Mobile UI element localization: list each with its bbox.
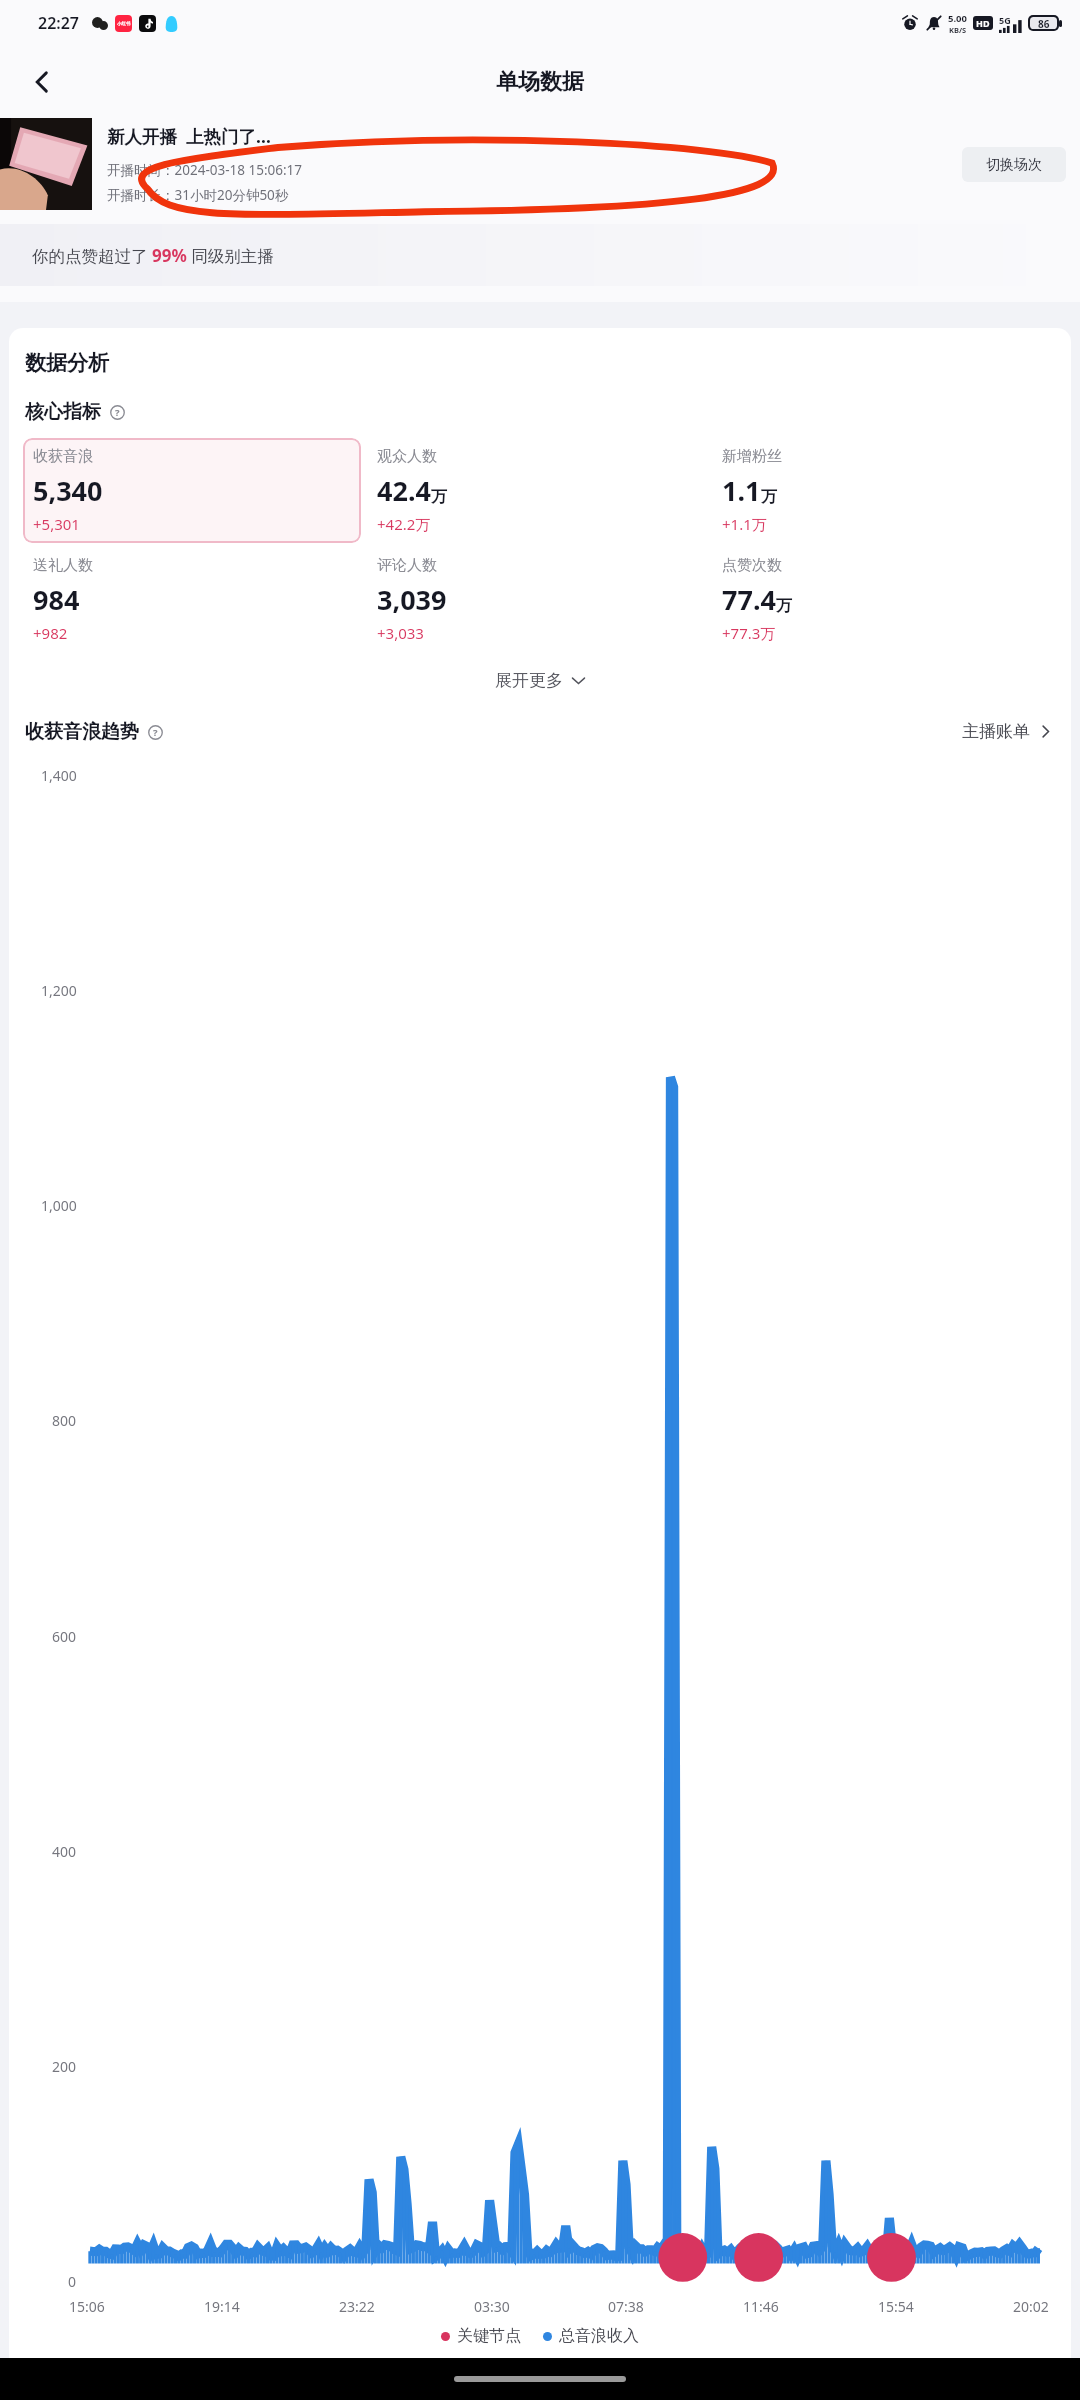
staticText: +77.3万 (722, 623, 776, 643)
button[interactable]: 主播账单 (958, 715, 1057, 748)
staticText: 15:06 (69, 2297, 105, 2316)
staticText: 5,340 (33, 472, 103, 509)
staticText: 42.4 (377, 472, 431, 509)
staticText: 984 (33, 581, 80, 618)
staticText: 86 (1038, 17, 1050, 29)
staticText: 你的点赞超过了 (32, 244, 152, 267)
staticText: 19:14 (204, 2297, 240, 2316)
staticText: 点赞次数 (722, 556, 782, 575)
button[interactable]: 新增粉丝 (712, 438, 1057, 543)
staticText: ? (153, 726, 158, 739)
staticText: 开播时间：2024-03-18 15:06:17 (107, 161, 303, 179)
staticText: 0 (68, 2272, 77, 2291)
staticText: 5G (999, 14, 1011, 26)
staticText: 总音浪收入 (559, 2326, 639, 2346)
staticText: 1.1 (722, 472, 761, 509)
button[interactable]: 评论人数 (367, 547, 712, 652)
staticText: +5,301 (33, 514, 80, 534)
staticText: +3,033 (377, 623, 424, 643)
staticText: 07:38 (608, 2297, 644, 2316)
staticText: 收获音浪 (33, 447, 93, 466)
staticText: 新增粉丝 (722, 447, 782, 466)
staticText: 切换场次 (986, 156, 1042, 174)
staticText: +1.1万 (722, 514, 767, 534)
staticText: 3,039 (377, 581, 447, 618)
staticText: 万 (761, 487, 777, 507)
staticText: 观众人数 (377, 447, 437, 466)
staticText: 主播账单 (962, 721, 1030, 742)
button[interactable]: 观众人数 (367, 438, 712, 543)
staticText: 1,200 (41, 981, 77, 1000)
button[interactable]: 切换场次 (962, 147, 1066, 182)
button[interactable]: 展开更多 (475, 662, 606, 699)
staticText: 11:46 (743, 2297, 779, 2316)
staticText: 收获音浪趋势 (25, 720, 139, 744)
staticText: 5.00 (948, 12, 967, 25)
staticText: 15:54 (878, 2297, 914, 2316)
staticText: 20:02 (1013, 2297, 1049, 2316)
button[interactable]: 说明 (107, 402, 127, 422)
staticText: 数据分析 (25, 350, 109, 376)
staticText: 开播时长：31小时20分钟50秒 (107, 186, 289, 204)
button[interactable]: 收获音浪 (23, 438, 361, 543)
staticText: 600 (52, 1627, 77, 1646)
staticText: 99% (152, 244, 187, 267)
staticText: 展开更多 (495, 670, 563, 691)
staticText: HD (976, 17, 990, 29)
staticText: 送礼人数 (33, 556, 93, 575)
staticText: 万 (776, 596, 792, 616)
staticText: 1,000 (41, 1196, 77, 1215)
staticText: 同级别主播 (187, 244, 274, 267)
staticText: 关键节点 (457, 2326, 521, 2346)
staticText: 77.4 (722, 581, 776, 618)
button[interactable]: 点赞次数 (712, 547, 1057, 652)
staticText: 200 (52, 2057, 77, 2076)
staticText: 新人开播 上热门了… (107, 124, 272, 148)
staticText: 22:27 (38, 12, 80, 34)
staticText: 小红书 (117, 21, 131, 27)
staticText: 核心指标 (25, 400, 101, 424)
staticText: 23:22 (339, 2297, 375, 2316)
staticText: 单场数据 (496, 68, 584, 96)
button[interactable]: 返回 (14, 54, 70, 110)
staticText: KB/S (949, 25, 967, 35)
staticText: +42.2万 (377, 514, 431, 534)
staticText: 万 (431, 487, 447, 507)
staticText: 1,400 (41, 766, 77, 785)
staticText: 评论人数 (377, 556, 437, 575)
button[interactable]: 说明 (145, 722, 165, 742)
staticText: 800 (52, 1411, 77, 1430)
staticText: ? (115, 406, 120, 419)
staticText: 03:30 (474, 2297, 510, 2316)
button[interactable]: 送礼人数 (23, 547, 367, 652)
staticText: +982 (33, 623, 68, 643)
staticText: 400 (52, 1842, 77, 1861)
